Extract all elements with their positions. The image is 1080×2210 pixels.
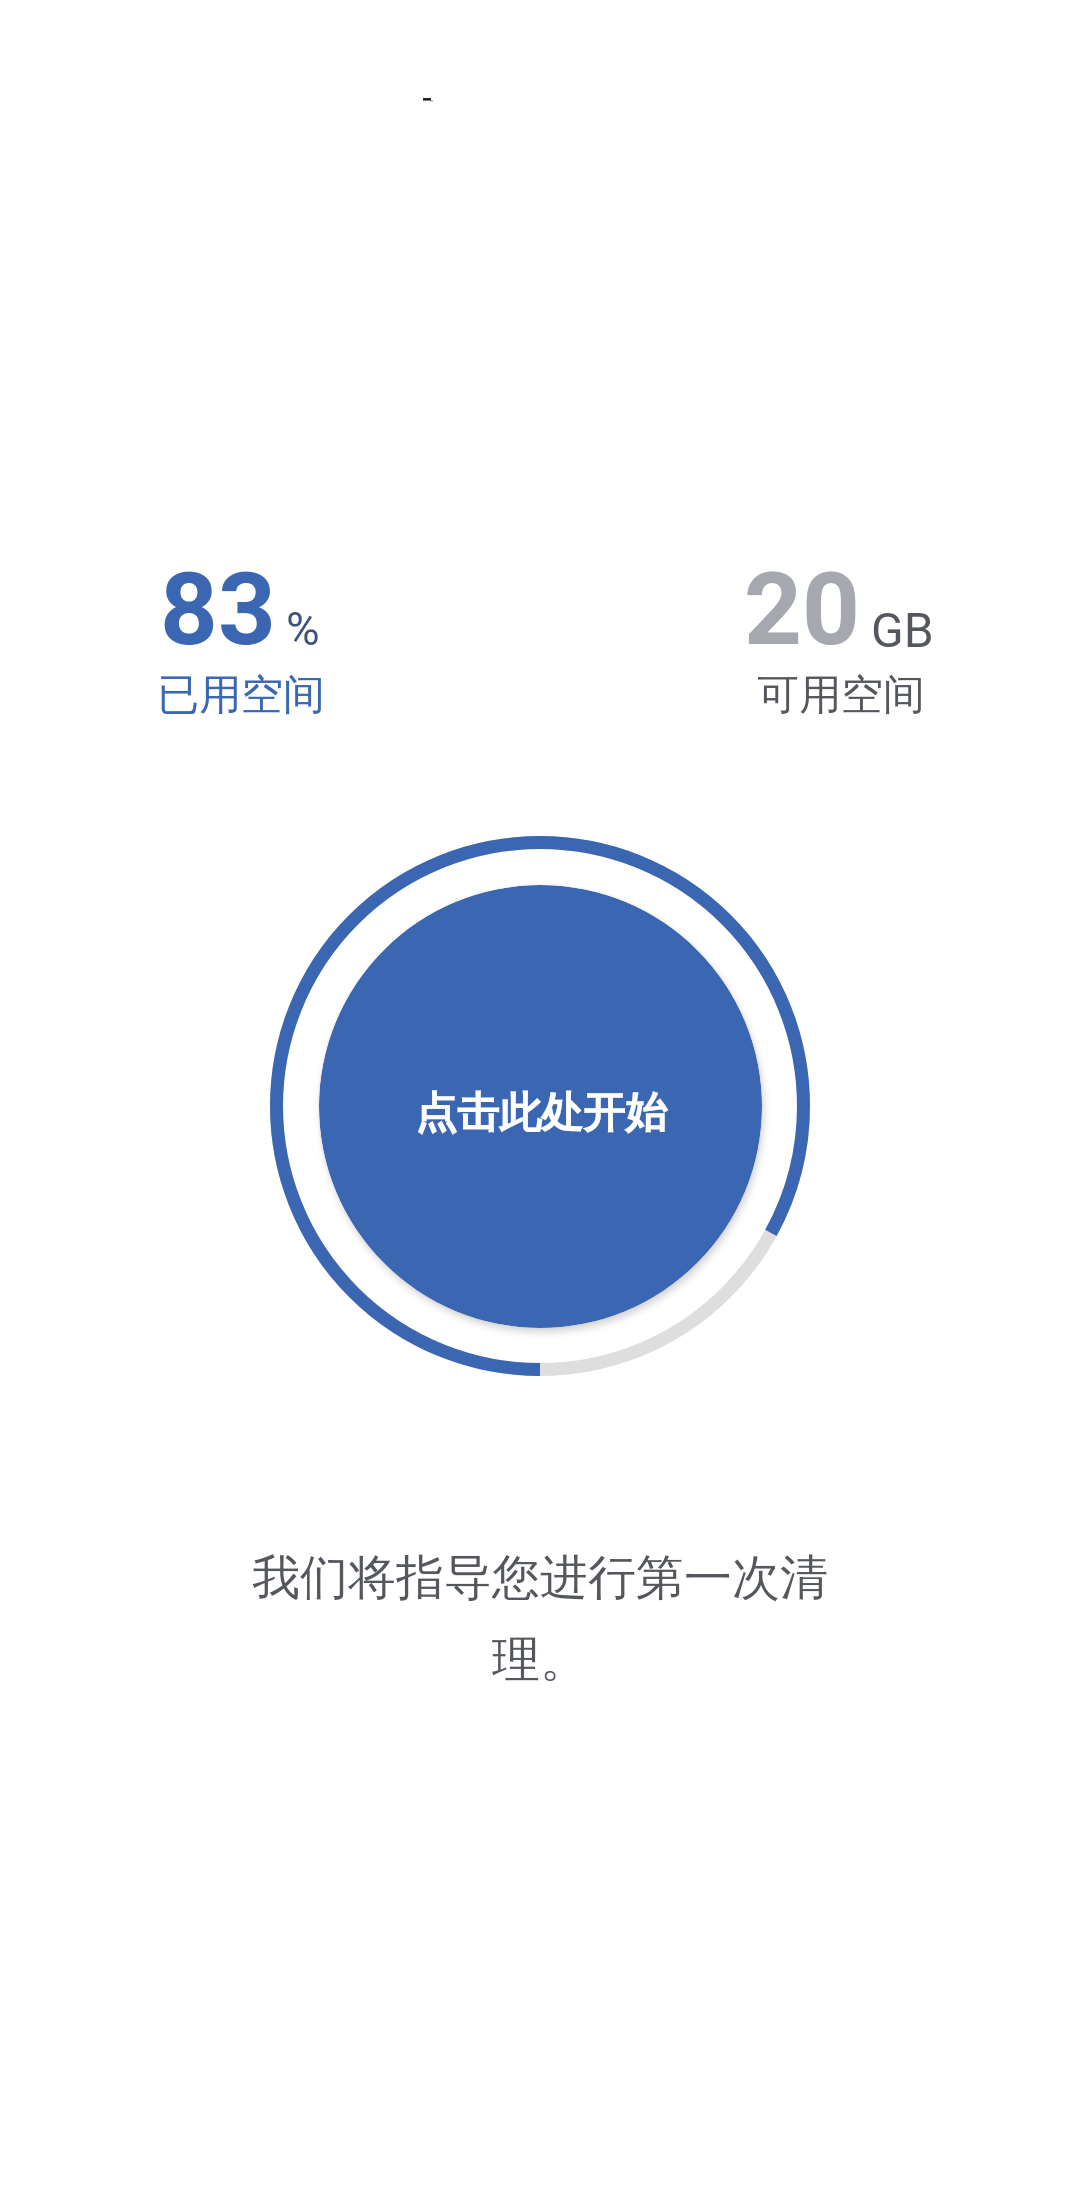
staticText: 我们将指导您进行第一次清理。 — [240, 1548, 840, 1690]
other: 已用空间 83% — [270, 836, 810, 1376]
staticText: 20 — [744, 550, 860, 668]
staticText: GB — [871, 602, 934, 658]
staticText: % — [286, 602, 320, 656]
button[interactable]: 点击此处开始 — [319, 885, 762, 1328]
staticText: 83 — [160, 550, 276, 668]
staticText: 已用空间 — [157, 669, 325, 722]
staticText: 点击此处开始 — [415, 1087, 667, 1140]
staticText: 可用空间 — [757, 669, 925, 722]
